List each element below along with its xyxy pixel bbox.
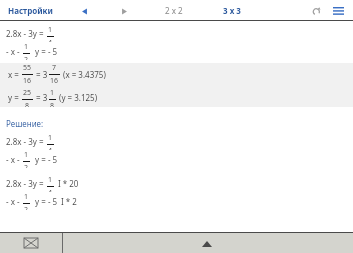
staticText: = 3 xyxy=(34,92,48,103)
staticText: 2.8x - 3y = xyxy=(6,28,46,39)
staticText: 16 xyxy=(23,76,32,86)
button[interactable]: Menu xyxy=(330,3,346,19)
staticText: I * 2 xyxy=(61,196,77,207)
staticText: x = xyxy=(8,69,21,80)
staticText: 4 xyxy=(48,38,53,42)
button[interactable]: Undo xyxy=(308,3,324,19)
staticText: Настройки xyxy=(8,5,53,16)
staticText: 25 xyxy=(23,88,32,98)
staticText: I * 20 xyxy=(58,178,79,189)
staticText: 7 xyxy=(52,63,57,73)
staticText: y = xyxy=(8,92,21,103)
staticText: 2 xyxy=(24,205,29,210)
staticText: 3 x 3 xyxy=(223,5,241,16)
staticText: 1 xyxy=(48,25,53,35)
staticText: 55 xyxy=(23,63,32,73)
staticText: 1 xyxy=(24,150,29,160)
staticText: 4 xyxy=(48,146,53,150)
staticText: 2 xyxy=(24,163,29,168)
staticText: 2 x 2 xyxy=(165,5,183,16)
button[interactable]: Expand xyxy=(63,232,353,253)
staticText: (y = 3.125) xyxy=(59,92,98,103)
button[interactable]: Настройки xyxy=(8,5,53,16)
staticText: - x - xyxy=(6,154,22,165)
staticText: = 3 xyxy=(34,69,48,80)
staticText: 1 xyxy=(50,88,55,98)
button[interactable]: Mail xyxy=(0,232,62,253)
button[interactable]: Next xyxy=(117,4,131,18)
staticText: 2 xyxy=(24,55,29,60)
staticText: y = - 5 xyxy=(33,154,58,165)
staticText: 8 xyxy=(50,101,55,107)
staticText: y = - 5 xyxy=(33,46,58,57)
staticText: 1 xyxy=(24,42,29,52)
staticText: 8 xyxy=(25,101,30,107)
button[interactable]: 2 x 2 xyxy=(165,5,183,16)
staticText: y = - 5 xyxy=(33,196,58,207)
staticText: 16 xyxy=(50,76,59,86)
staticText: - x - xyxy=(6,46,22,57)
staticText: 1 xyxy=(48,175,53,185)
staticText: 4 xyxy=(48,188,53,192)
button[interactable]: 3 x 3 xyxy=(223,5,241,16)
staticText: 2.8x - 3y = xyxy=(6,136,46,147)
staticText: 2.8x - 3y = xyxy=(6,178,46,189)
staticText: 1 xyxy=(24,192,29,202)
staticText: - x - xyxy=(6,196,22,207)
staticText: (x = 3.4375) xyxy=(63,69,106,80)
staticText: 1 xyxy=(48,133,53,143)
staticText: Решение: xyxy=(6,118,44,129)
button[interactable]: Previous xyxy=(77,4,91,18)
